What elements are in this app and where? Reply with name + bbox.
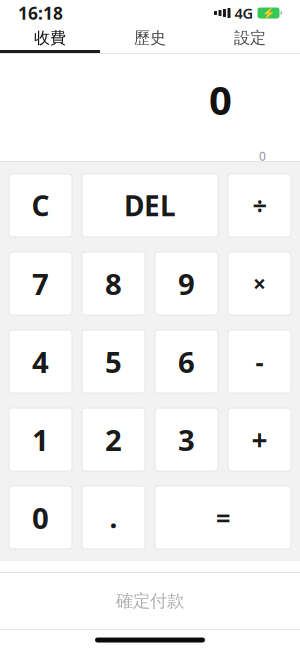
button[interactable]: 1	[9, 408, 72, 471]
button[interactable]: 8	[82, 252, 145, 315]
staticText: 0	[209, 73, 232, 126]
staticText: 6	[178, 342, 195, 381]
staticText: ×	[253, 268, 266, 298]
button[interactable]: 3	[155, 408, 218, 471]
staticText: ⚡	[262, 7, 275, 19]
staticText: 4	[32, 342, 49, 381]
button[interactable]: DEL	[82, 174, 218, 237]
staticText: =	[216, 501, 230, 534]
button[interactable]: 歷史	[100, 27, 200, 49]
staticText: ÷	[252, 189, 266, 222]
button[interactable]: 2	[82, 408, 145, 471]
staticText: 1	[32, 420, 49, 459]
button[interactable]: 確定付款	[0, 573, 300, 629]
staticText: 4G	[234, 3, 253, 23]
staticText: .	[109, 499, 117, 536]
button[interactable]: ×	[228, 252, 291, 315]
staticText: 7	[32, 264, 49, 303]
staticText: 收費	[34, 28, 66, 48]
staticText: 16:18	[18, 1, 63, 24]
staticText: 設定	[234, 28, 266, 48]
button[interactable]: C	[9, 174, 72, 237]
button[interactable]: +	[228, 408, 291, 471]
staticText: C	[31, 187, 49, 224]
staticText: 8	[105, 264, 122, 303]
button[interactable]: 6	[155, 330, 218, 393]
staticText: +	[251, 421, 267, 458]
staticText: 5	[105, 342, 122, 381]
button[interactable]: ÷	[228, 174, 291, 237]
staticText: -	[255, 345, 263, 378]
button[interactable]: -	[228, 330, 291, 393]
staticText: 3	[178, 420, 195, 459]
button[interactable]: =	[155, 486, 291, 549]
staticText: 2	[105, 420, 122, 459]
button[interactable]: 4	[9, 330, 72, 393]
staticText: 9	[178, 264, 195, 303]
button[interactable]: 設定	[200, 27, 300, 49]
staticText: 歷史	[134, 28, 166, 48]
button[interactable]: 5	[82, 330, 145, 393]
staticText: 0	[32, 498, 49, 537]
button[interactable]: 0	[9, 486, 72, 549]
staticText: 0	[259, 148, 266, 164]
staticText: DEL	[124, 187, 176, 224]
button[interactable]: .	[82, 486, 145, 549]
button[interactable]: 7	[9, 252, 72, 315]
button[interactable]: 9	[155, 252, 218, 315]
button[interactable]: 收費	[0, 27, 100, 49]
staticText: 確定付款	[116, 590, 184, 612]
